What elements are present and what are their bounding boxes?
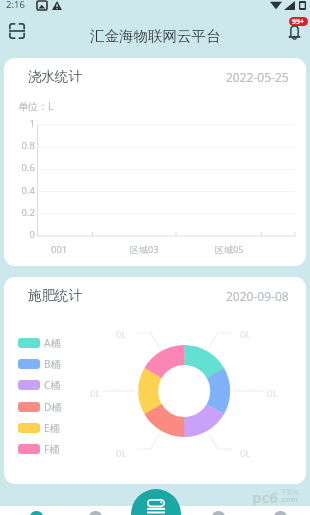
staticText: 99+	[292, 17, 305, 26]
staticText: 0.2	[4, 206, 35, 219]
staticText: D桶	[44, 400, 62, 414]
staticText: .com	[280, 494, 298, 504]
staticText: 0L	[267, 387, 278, 400]
staticText: 0L	[90, 387, 101, 400]
button[interactable]: Scan QR code	[1, 15, 33, 47]
staticText: 0.8	[4, 139, 35, 152]
staticText: 汇金海物联网云平台	[90, 27, 221, 45]
staticText: C桶	[44, 378, 61, 392]
staticText: 区域05	[215, 243, 244, 255]
staticText: 0L	[116, 447, 127, 460]
staticText: F桶	[44, 442, 60, 456]
staticText: 0.4	[4, 184, 35, 197]
staticText: 单位：L	[18, 99, 54, 113]
staticText: 0	[4, 228, 35, 241]
button[interactable]: Control panel	[131, 489, 181, 515]
button[interactable]: Profile	[267, 506, 293, 515]
staticText: 0L	[116, 328, 127, 341]
staticText: 区域03	[130, 243, 159, 255]
staticText: 2022-05-25	[226, 69, 289, 85]
staticText: B桶	[44, 357, 61, 371]
button[interactable]: Messages	[205, 506, 231, 515]
staticText: 001	[51, 243, 68, 256]
staticText: A桶	[44, 336, 61, 350]
staticText: 0L	[240, 328, 251, 341]
staticText: 下载站	[281, 488, 299, 496]
staticText: 0L	[240, 447, 251, 460]
staticText: 浇水统计	[28, 68, 82, 85]
staticText: E桶	[44, 421, 60, 435]
button[interactable]: Home	[23, 506, 49, 515]
staticText: 1	[4, 117, 35, 130]
button[interactable]: Notifications	[280, 13, 310, 43]
staticText: 0.6	[4, 161, 35, 174]
staticText: 2:16	[6, 0, 25, 11]
button[interactable]: Devices	[82, 506, 108, 515]
staticText: pc6	[252, 487, 278, 507]
staticText: 2020-09-08	[226, 288, 289, 304]
staticText: 施肥统计	[28, 287, 82, 304]
